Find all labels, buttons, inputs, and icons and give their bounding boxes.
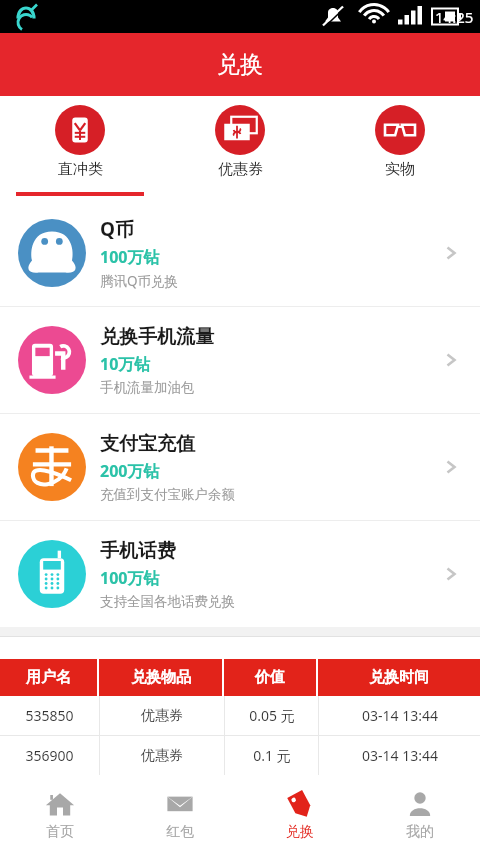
staticText: 200万钻 xyxy=(100,460,160,482)
button[interactable]: 兑换手机流量 xyxy=(0,307,480,413)
staticText: 100万钻 xyxy=(100,246,160,268)
staticText: 红包 xyxy=(166,823,194,841)
staticText: 兑换 xyxy=(286,823,314,841)
staticText: 优惠券 xyxy=(141,747,183,765)
staticText: 优惠券 xyxy=(141,707,183,725)
staticText: 535850 xyxy=(25,706,74,725)
staticText: 直冲类 xyxy=(58,160,103,179)
button[interactable]: 我的 xyxy=(360,780,480,853)
staticText: 实物 xyxy=(385,160,415,179)
staticText: 兑换物品 xyxy=(131,668,191,687)
staticText: 我的 xyxy=(406,823,434,841)
staticText: 腾讯Q币兑换 xyxy=(100,272,179,290)
staticText: 首页 xyxy=(46,823,74,841)
button[interactable]: 首页 xyxy=(0,780,120,853)
staticText: 03-14 13:44 xyxy=(362,746,438,765)
button[interactable]: 红包 xyxy=(120,780,240,853)
staticText: 兑换手机流量 xyxy=(100,325,214,349)
staticText: 支付宝充值 xyxy=(100,432,195,456)
staticText: 03-14 13:44 xyxy=(362,706,438,725)
staticText: 0.05 元 xyxy=(249,706,295,725)
button[interactable]: 实物 xyxy=(320,96,480,200)
staticText: Q币 xyxy=(100,216,135,242)
staticText: 10万钻 xyxy=(100,353,151,375)
button[interactable]: 兑换 xyxy=(240,780,360,853)
button[interactable]: 优惠券 xyxy=(160,96,320,200)
other: 兑换 xyxy=(285,789,315,819)
staticText: 兑换时间 xyxy=(369,668,429,687)
staticText: 用户名 xyxy=(26,668,71,687)
staticText: 优惠券 xyxy=(218,160,263,179)
staticText: 356900 xyxy=(25,746,74,765)
button[interactable]: 直冲类 xyxy=(0,96,160,200)
button[interactable]: 手机话费 xyxy=(0,521,480,627)
staticText: 100万钻 xyxy=(100,567,160,589)
staticText: 支持全国各地话费兑换 xyxy=(100,593,235,610)
staticText: 价值 xyxy=(255,668,285,687)
staticText: 14:25 xyxy=(435,7,474,27)
staticText: 0.1 元 xyxy=(253,746,291,765)
staticText: 兑换 xyxy=(217,50,263,79)
staticText: 手机话费 xyxy=(100,539,176,563)
staticText: 充值到支付宝账户余额 xyxy=(100,486,235,503)
button[interactable]: Q币 xyxy=(0,200,480,306)
button[interactable]: 支付宝充值 xyxy=(0,414,480,520)
staticText: 手机流量加油包 xyxy=(100,379,195,396)
